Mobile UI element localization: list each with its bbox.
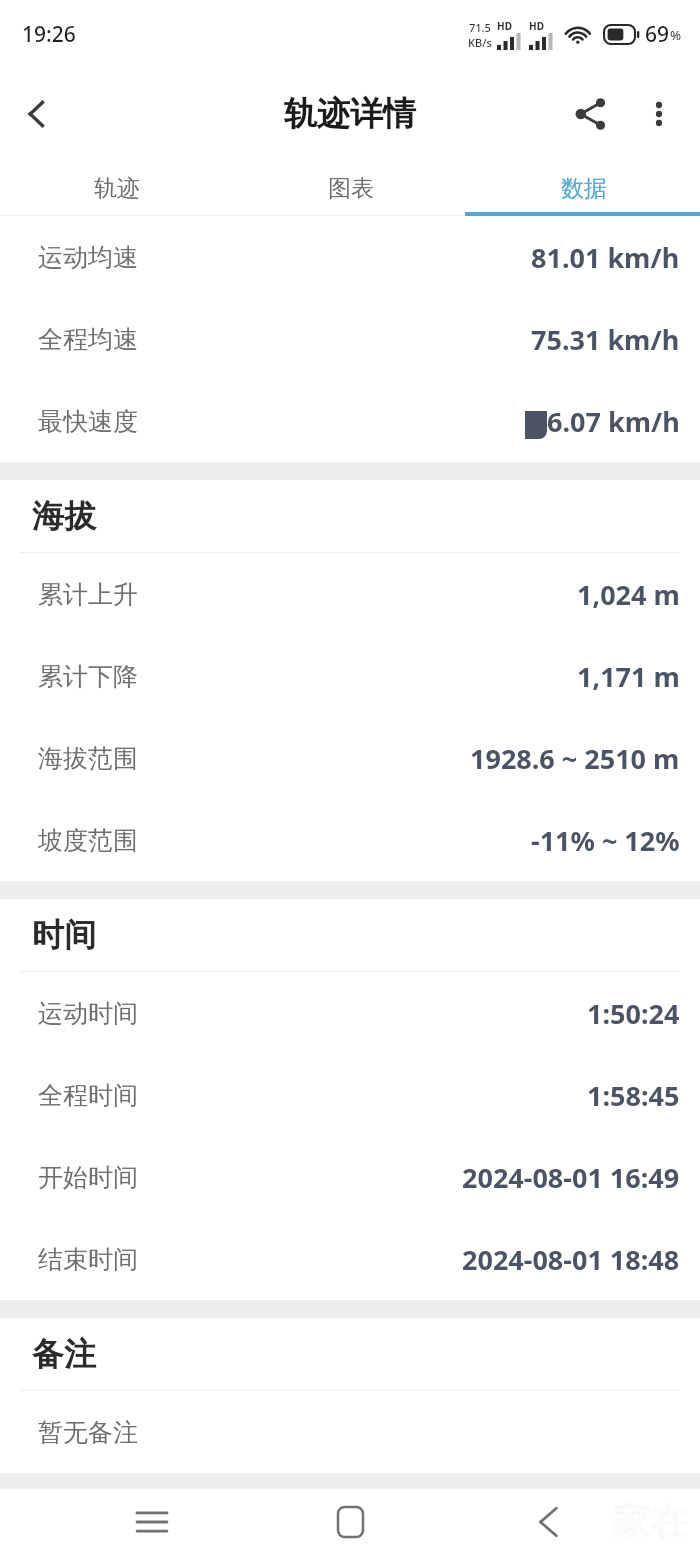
staticText: 开始时间 [38,1162,138,1193]
staticText: HD [529,19,544,33]
button[interactable]: Recent apps [106,1489,198,1555]
staticText: 69 [645,20,670,49]
staticText: 轨迹详情 [284,93,416,135]
staticText: KB/s [468,35,492,50]
staticText: 1:58:45 [587,1077,680,1114]
staticText: 备注 [32,1334,96,1374]
button[interactable]: Back [502,1489,594,1555]
button[interactable]: 结束时间 [0,1218,700,1300]
staticText: 坡度范围 [38,825,138,856]
staticText: 图表 [328,174,374,203]
staticText: 1,024 m [577,576,680,613]
staticText: HD [497,19,512,33]
button[interactable]: 运动均速 [0,216,700,298]
staticText: 运动均速 [38,242,138,273]
staticText: 71.5 [469,20,491,35]
staticText: 75.31 km/h [531,321,680,358]
staticText: 海拔范围 [38,743,138,774]
staticText: 1,171 m [577,658,680,695]
staticText: 海拔 [32,496,96,536]
staticText: 2024-08-01 18:48 [462,1241,680,1278]
button[interactable]: 数据 [467,160,700,216]
button[interactable]: 全程均速 [0,298,700,380]
staticText: 最快速度 [38,406,138,437]
button[interactable]: Share [554,77,628,151]
button[interactable]: 图表 [234,160,467,216]
staticText: 2024-08-01 16:49 [462,1159,680,1196]
staticText: 结束时间 [38,1244,138,1275]
button[interactable]: 坡度范围 [0,799,700,881]
staticText: 全程均速 [38,324,138,355]
staticText: 19:26 [22,20,76,49]
button[interactable]: 开始时间 [0,1136,700,1218]
button[interactable]: 轨迹 [0,160,234,216]
button[interactable]: More options [628,83,690,145]
button[interactable]: 累计下降 [0,635,700,717]
button[interactable]: 海拔范围 [0,717,700,799]
staticText: 累计下降 [38,661,138,692]
staticText: -11% ~ 12% [531,822,680,859]
staticText: 6.07 km/h [547,403,680,440]
staticText: 轨迹 [94,174,140,203]
staticText: 时间 [32,915,96,955]
button[interactable]: 暂无备注 [0,1391,700,1473]
button[interactable]: Back [0,77,74,151]
button[interactable]: 全程时间 [0,1054,700,1136]
staticText: 1:50:24 [587,995,680,1032]
staticText: 81.01 km/h [531,239,680,276]
button[interactable]: Home [304,1489,396,1555]
staticText: % [670,26,682,44]
button[interactable]: 运动时间 [0,972,700,1054]
staticText: 累计上升 [38,579,138,610]
staticText: 暂无备注 [38,1417,138,1448]
button[interactable]: 累计上升 [0,553,700,635]
staticText: 1928.6 ~ 2510 m [470,740,680,777]
button[interactable]: 最快速度 [0,380,700,462]
staticText: 数据 [561,174,607,203]
staticText: 运动时间 [38,998,138,1029]
staticText: 全程时间 [38,1080,138,1111]
